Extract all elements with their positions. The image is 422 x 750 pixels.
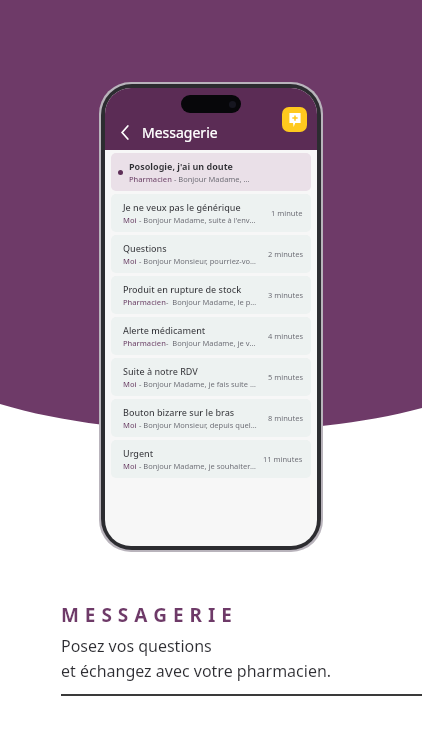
staticText: 2 minutes (268, 249, 303, 259)
staticText: 8 minutes (268, 413, 303, 423)
staticText: Bouton bizarre sur le bras (123, 406, 235, 418)
staticText: Questions (123, 242, 167, 254)
staticText: 4 minutes (268, 331, 303, 341)
button[interactable]: Bouton bizarre sur le bras (111, 399, 311, 437)
staticText: - Bonjour Monsieur, depuis quelques ... (137, 420, 259, 430)
button[interactable]: Posologie, j'ai un doute (111, 153, 311, 191)
staticText: 3 minutes (268, 290, 303, 300)
staticText: Alerte médicament (123, 324, 206, 336)
staticText: Posez vos questions (61, 635, 212, 657)
staticText: - Bonjour Madame, le produit ... (166, 297, 259, 307)
staticText: Je ne veux pas le générique (123, 201, 241, 213)
button[interactable]: Alerte médicament (111, 317, 311, 355)
staticText: Pharmacien (123, 297, 166, 307)
staticText: - Bonjour Monsieur, pourriez-vous me ... (137, 256, 259, 266)
staticText: Urgent (123, 447, 154, 459)
staticText: Moi (123, 256, 137, 266)
button[interactable]: Je ne veux pas le générique (111, 194, 311, 232)
staticText: Pharmacien (123, 338, 166, 348)
staticText: Produit en rupture de stock (123, 283, 242, 295)
button[interactable]: Retour (114, 121, 136, 143)
staticText: Moi (123, 215, 137, 225)
staticText: Posologie, j'ai un doute (129, 160, 233, 172)
staticText: Moi (123, 379, 137, 389)
staticText: 5 minutes (268, 372, 303, 382)
button[interactable]: Suite à notre RDV (111, 358, 311, 396)
staticText: - Bonjour Madame, je vous ... (166, 338, 259, 348)
staticText: - Bonjour Madame, suite à l'envoi de mo.… (137, 215, 259, 225)
staticText: 11 minutes (263, 454, 303, 464)
staticText: Moi (123, 420, 137, 430)
staticText: - Bonjour Madame, je fais suite à notre.… (137, 379, 259, 389)
staticText: Messagerie (142, 123, 218, 142)
staticText: M E S S A G E R I E (61, 602, 233, 628)
staticText: - Bonjour Madame, je souhaiterais ... (137, 461, 259, 471)
staticText: Moi (123, 461, 137, 471)
button[interactable]: Nouveau message (282, 107, 307, 132)
button[interactable]: Questions (111, 235, 311, 273)
button[interactable]: Produit en rupture de stock (111, 276, 311, 314)
staticText: Pharmacien (129, 174, 172, 184)
staticText: et échangez avec votre pharmacien. (61, 660, 332, 682)
staticText: - Bonjour Madame, ... (172, 174, 250, 184)
button[interactable]: Urgent (111, 440, 311, 478)
staticText: 1 minute (271, 208, 303, 218)
staticText: Suite à notre RDV (123, 365, 198, 377)
